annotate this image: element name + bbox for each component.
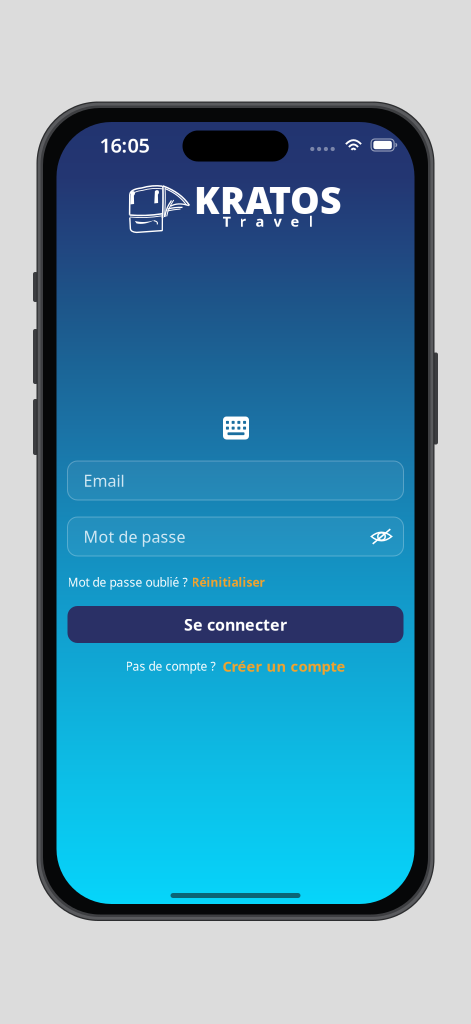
- button[interactable]: Email: [67, 461, 403, 500]
- button[interactable]: Créer un compte: [222, 656, 345, 676]
- staticText: T: [222, 211, 230, 231]
- staticText: v: [273, 211, 281, 231]
- staticText: Réinitialiser: [191, 574, 264, 590]
- staticText: Se connecter: [184, 614, 287, 635]
- staticText: a: [255, 211, 264, 231]
- staticText: Mot de passe oublié ?: [67, 574, 187, 590]
- staticText: Pas de compte ?: [125, 658, 215, 674]
- button[interactable]: Se connecter: [67, 606, 403, 643]
- staticText: Mot de passe: [83, 526, 185, 547]
- staticText: Créer un compte: [222, 656, 345, 676]
- button[interactable]: Réinitialiser: [191, 574, 264, 590]
- staticText: e: [290, 211, 299, 231]
- staticText: 16:05: [99, 132, 149, 158]
- staticText: r: [239, 211, 246, 231]
- button[interactable]: Mot de passe: [67, 517, 403, 556]
- staticText: Email: [83, 470, 124, 491]
- staticText: KRATOS: [194, 175, 342, 224]
- staticText: l: [308, 211, 312, 231]
